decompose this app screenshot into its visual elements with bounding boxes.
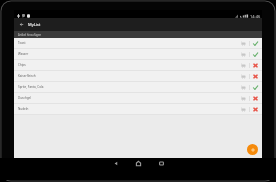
- staticText: Wasser: [18, 52, 239, 56]
- staticText: Sprite, Fanta, Cola: [18, 85, 239, 89]
- button[interactable]: Sprite, Fanta, Cola: [14, 82, 262, 92]
- staticText: Kaiserfleisch: [18, 74, 239, 78]
- staticText: Artikel hinzufügen: [18, 33, 42, 37]
- button[interactable]: Remove: [250, 71, 260, 81]
- staticText: Chips: [18, 63, 239, 67]
- button[interactable]: Mark done: [250, 82, 260, 92]
- staticText: Toast: [18, 41, 239, 45]
- button[interactable]: Artikel hinzufügen: [14, 31, 262, 38]
- button[interactable]: Add to cart: [239, 104, 247, 114]
- button[interactable]: Add to cart: [239, 82, 247, 92]
- button[interactable]: Remove: [250, 60, 260, 70]
- button[interactable]: Duschgel: [14, 93, 262, 103]
- button[interactable]: Recent apps: [156, 158, 167, 169]
- button[interactable]: Home: [133, 158, 144, 169]
- button[interactable]: Back: [14, 18, 29, 31]
- button[interactable]: Add to cart: [239, 93, 247, 103]
- button[interactable]: Add item: [247, 144, 258, 155]
- button[interactable]: Add to cart: [239, 60, 247, 70]
- button[interactable]: Add to cart: [239, 49, 247, 59]
- button[interactable]: Add to cart: [239, 71, 247, 81]
- button[interactable]: Mark done: [250, 49, 260, 59]
- staticText: 14:46: [250, 14, 261, 18]
- staticText: MyList: [28, 22, 41, 27]
- button[interactable]: Toast: [14, 38, 262, 48]
- button[interactable]: Mark done: [250, 38, 260, 48]
- button[interactable]: Chips: [14, 60, 262, 70]
- button[interactable]: Wasser: [14, 49, 262, 59]
- button[interactable]: Add to cart: [239, 38, 247, 48]
- button[interactable]: Remove: [250, 104, 260, 114]
- button[interactable]: Back: [110, 158, 121, 169]
- button[interactable]: Kaiserfleisch: [14, 71, 262, 81]
- staticText: Duschgel: [18, 96, 239, 100]
- button[interactable]: Nudeln: [14, 104, 262, 114]
- staticText: Nudeln: [18, 107, 239, 111]
- button[interactable]: Remove: [250, 93, 260, 103]
